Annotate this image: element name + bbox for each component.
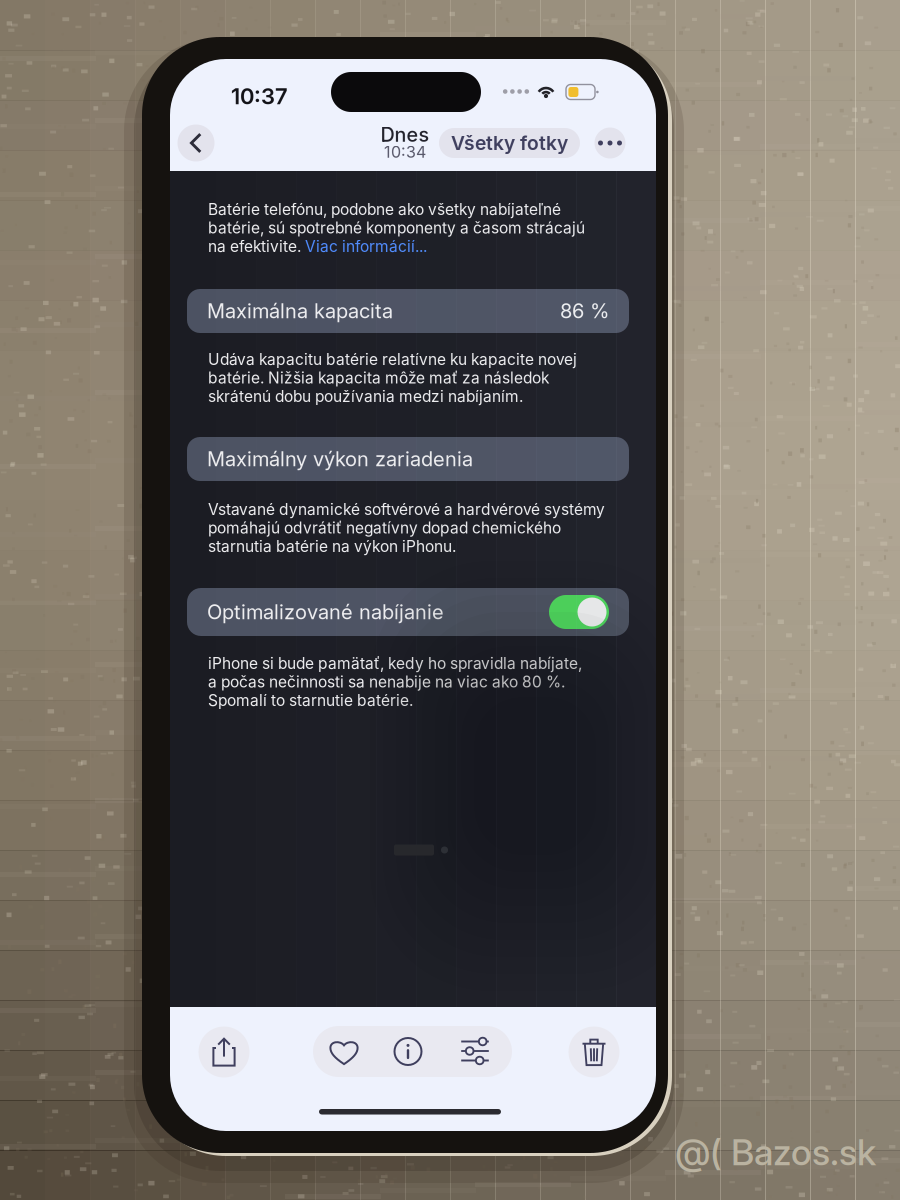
staticText: Udáva kapacitu batérie relatívne ku kapa… (208, 350, 577, 369)
staticText: Maximálny výkon zariadenia (207, 447, 473, 471)
staticText: Maximálna kapacita (207, 299, 393, 323)
button[interactable]: Delete (565, 1023, 623, 1081)
staticText: pomáhajú odvrátiť negatívny dopad chemic… (208, 518, 561, 537)
staticText: batérie, sú spotrebné komponenty a časom… (208, 218, 585, 237)
staticText: 10:34 (384, 142, 426, 162)
staticText: na efektivite. (208, 237, 305, 256)
button[interactable]: Viac informácií... (305, 237, 427, 256)
button[interactable]: Adjust (444, 1026, 506, 1077)
button[interactable]: Optimalizované nabíjanie (187, 588, 629, 636)
staticText: Dnes (380, 123, 429, 146)
staticText: Všetky fotky (451, 131, 568, 155)
staticText: Optimalizované nabíjanie (207, 600, 444, 624)
staticText: skrátenú dobu používania medzi nabíjaním… (208, 387, 523, 406)
staticText: Spomalí to starnutie batérie. (208, 691, 413, 710)
staticText: 86 % (560, 299, 609, 323)
staticText: @( Bazos.sk (675, 1130, 876, 1174)
staticText: a počas nečinnosti sa nenabije na viac a… (208, 672, 565, 691)
staticText: Batérie telefónu, podobne ako všetky nab… (208, 200, 561, 219)
staticText: starnutia batérie na výkon iPhonu. (208, 537, 456, 556)
button[interactable]: Back (172, 119, 220, 167)
button[interactable]: Maximálny výkon zariadenia (187, 437, 629, 481)
button[interactable]: Share (195, 1023, 253, 1081)
button[interactable]: Favourite (313, 1026, 375, 1077)
staticText: Viac informácií... (305, 237, 427, 256)
button[interactable]: Info (377, 1026, 439, 1077)
button[interactable]: Maximálna kapacita (187, 289, 629, 333)
staticText: 10:37 (231, 83, 288, 110)
staticText: iPhone si bude pamätať, kedy ho spravidl… (208, 654, 582, 673)
button[interactable]: More (589, 122, 631, 164)
button[interactable]: Všetky fotky (439, 128, 580, 158)
staticText: Vstavané dynamické softvérové a hardvéro… (208, 500, 605, 519)
staticText: batérie. Nižšia kapacita môže mať za nás… (208, 368, 549, 387)
